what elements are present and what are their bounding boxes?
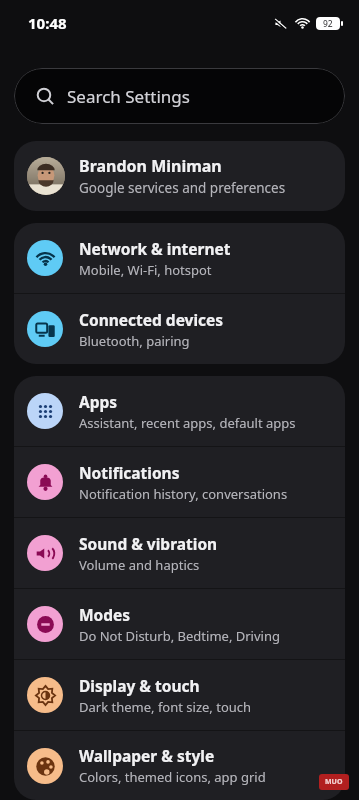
- button[interactable]: Network & internet: [14, 223, 345, 293]
- staticText: MUO: [325, 777, 343, 787]
- button[interactable]: Brandon Miniman: [14, 141, 345, 211]
- staticText: Apps: [79, 391, 118, 412]
- staticText: Mobile, Wi-Fi, hotspot: [79, 261, 212, 279]
- staticText: Volume and haptics: [79, 556, 200, 574]
- staticText: Notifications: [79, 462, 180, 483]
- staticText: Notification history, conversations: [79, 485, 288, 503]
- button[interactable]: Connected devices: [14, 294, 345, 364]
- button[interactable]: Apps: [14, 376, 345, 446]
- staticText: Assistant, recent apps, default apps: [79, 414, 296, 432]
- staticText: Do Not Disturb, Bedtime, Driving: [79, 627, 280, 645]
- staticText: Connected devices: [79, 309, 224, 330]
- button[interactable]: Sound & vibration: [14, 518, 345, 588]
- staticText: Modes: [79, 604, 131, 625]
- staticText: Network & internet: [79, 238, 231, 259]
- staticText: Wallpaper & style: [79, 745, 215, 766]
- staticText: 92: [323, 18, 333, 30]
- staticText: Google services and preferences: [79, 179, 286, 197]
- staticText: Display & touch: [79, 675, 200, 696]
- staticText: 10:48: [28, 13, 67, 33]
- staticText: Search Settings: [67, 85, 190, 108]
- button[interactable]: Display & touch: [14, 660, 345, 730]
- staticText: Dark theme, font size, touch: [79, 698, 252, 716]
- button[interactable]: Notifications: [14, 447, 345, 517]
- button[interactable]: Wallpaper & style: [14, 731, 345, 800]
- staticText: Sound & vibration: [79, 533, 218, 554]
- button[interactable]: Search Settings: [14, 68, 345, 124]
- staticText: Brandon Miniman: [79, 155, 222, 177]
- staticText: Colors, themed icons, app grid: [79, 768, 266, 786]
- staticText: Bluetooth, pairing: [79, 332, 190, 350]
- button[interactable]: Modes: [14, 589, 345, 659]
